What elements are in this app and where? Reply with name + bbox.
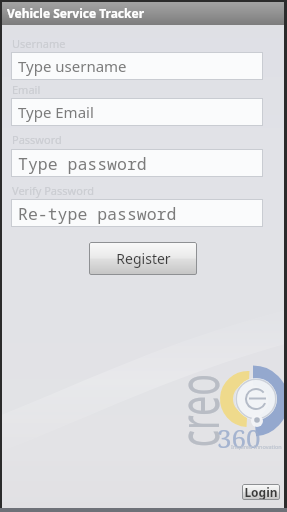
button[interactable]: Register [89, 242, 197, 275]
staticText: Verify Password [12, 183, 94, 198]
staticText: Register [116, 249, 171, 268]
staticText: Email [12, 82, 41, 97]
button[interactable]: Type Email [11, 98, 263, 126]
button[interactable]: Type password [11, 149, 263, 177]
staticText: Inspired Innovation [231, 443, 282, 450]
staticText: Password [12, 132, 62, 147]
staticText: Vehicle Service Tracker [7, 5, 145, 21]
staticText: Type password [18, 152, 147, 174]
button[interactable]: Login [242, 484, 280, 500]
staticText: Type Email [18, 102, 94, 122]
staticText: Re-type password [18, 202, 177, 224]
staticText: creo [159, 374, 235, 447]
staticText: Login [244, 484, 278, 500]
staticText: Username [12, 36, 66, 51]
button[interactable]: Vehicle Service Tracker [0, 2, 287, 25]
button[interactable]: Type username [11, 52, 263, 80]
button[interactable]: Re-type password [11, 199, 263, 227]
staticText: 360 [217, 420, 261, 455]
staticText: Type username [18, 56, 127, 76]
